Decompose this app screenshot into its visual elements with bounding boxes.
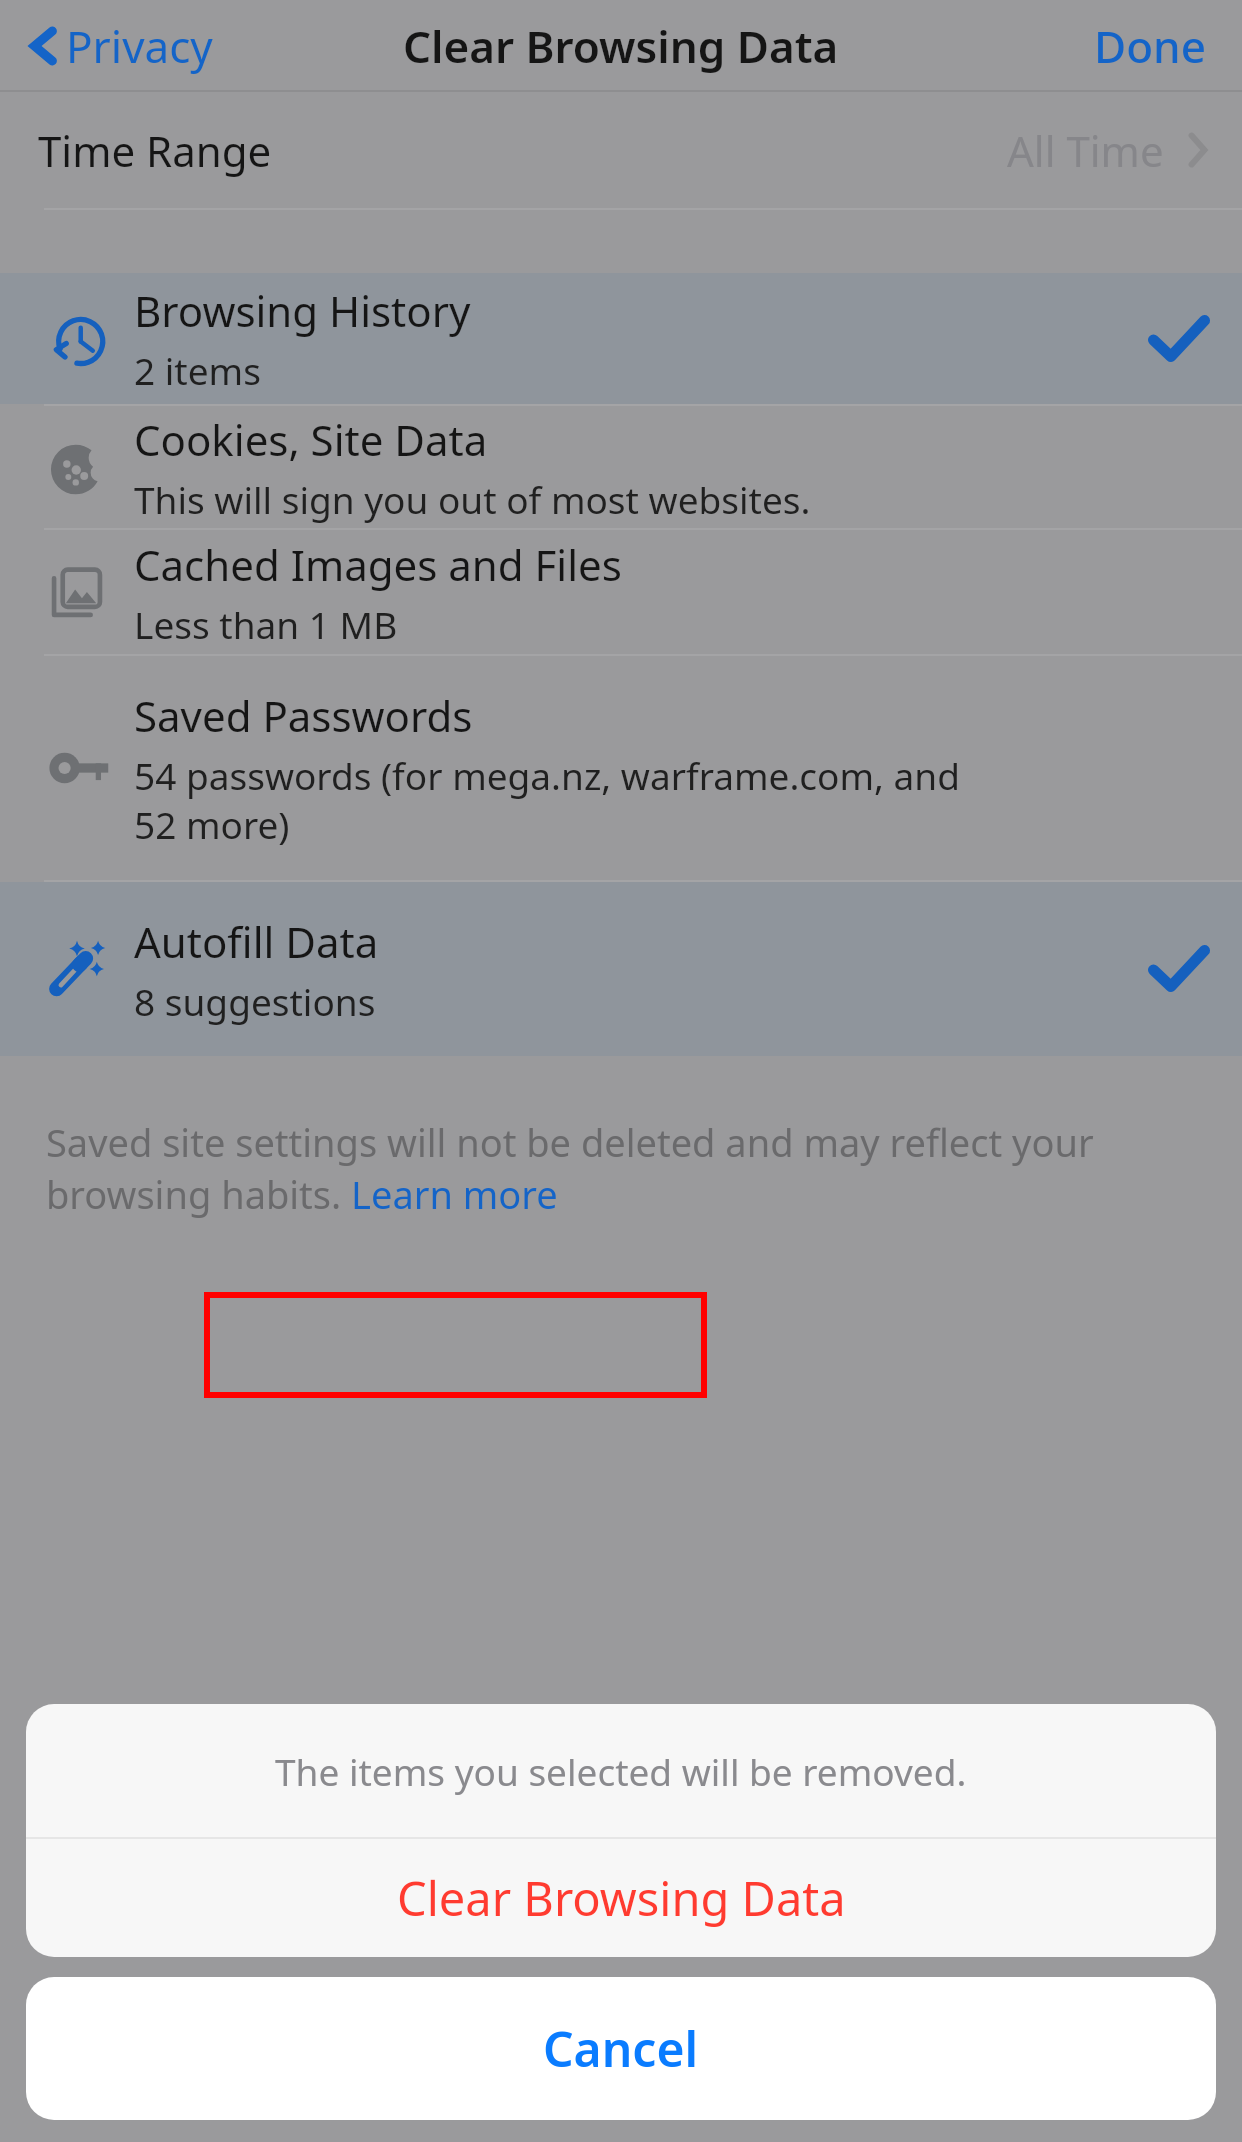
button[interactable]: Browsing History — [0, 273, 1242, 404]
staticText: 8 suggestions — [134, 976, 376, 1026]
button[interactable]: Autofill Data — [0, 882, 1242, 1056]
button[interactable]: Clear Browsing Data — [26, 1839, 1216, 1957]
staticText: Cancel — [543, 2016, 699, 2081]
button[interactable]: Done — [1094, 8, 1206, 84]
staticText: All Time — [1007, 122, 1164, 179]
staticText: This will sign you out of most websites. — [134, 474, 811, 524]
button[interactable]: Cached Images and Files — [0, 530, 1242, 654]
staticText: Less than 1 MB — [134, 599, 398, 649]
button[interactable]: Privacy — [30, 8, 213, 84]
button[interactable]: Cookies, Site Data — [0, 406, 1242, 528]
staticText: Cached Images and Files — [134, 536, 622, 593]
staticText: Time Range — [38, 122, 272, 179]
staticText: Autofill Data — [134, 913, 379, 970]
button[interactable]: Saved Passwords — [0, 656, 1242, 880]
staticText: Privacy — [66, 16, 213, 76]
staticText: The items you selected will be removed. — [275, 1746, 967, 1796]
staticText: 54 passwords (for mega.nz, warframe.com,… — [134, 750, 960, 850]
staticText: 2 items — [134, 345, 261, 395]
staticText: Browsing History — [134, 282, 471, 339]
staticText: Saved site settings will not be deleted … — [46, 1116, 1196, 1220]
staticText: Clear Browsing Data — [403, 16, 839, 76]
staticText: Done — [1094, 16, 1206, 76]
staticText: Clear Browsing Data — [397, 1866, 846, 1930]
staticText: Cookies, Site Data — [134, 411, 488, 468]
button[interactable]: Cancel — [26, 1977, 1216, 2120]
staticText: Saved Passwords — [134, 687, 473, 744]
button[interactable]: Time Range — [0, 92, 1242, 208]
